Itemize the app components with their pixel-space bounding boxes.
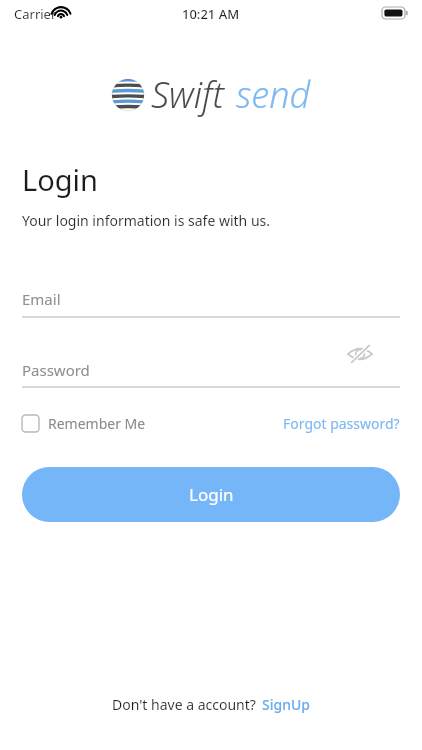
staticText: Carrier [14, 5, 57, 23]
button[interactable]: SignUp [262, 695, 310, 714]
staticText: Email [22, 289, 61, 309]
button[interactable]: Login [22, 467, 400, 522]
staticText: send [236, 70, 311, 119]
staticText: Your login information is safe with us. [22, 211, 271, 230]
button[interactable]: Show password [344, 338, 376, 370]
staticText: Swift [151, 70, 225, 119]
staticText: 10:21 AM [182, 5, 240, 23]
staticText: SignUp [262, 695, 310, 714]
button[interactable]: Email [22, 280, 400, 318]
button[interactable]: Password [22, 352, 400, 388]
button[interactable]: Remember Me [22, 414, 146, 433]
staticText: Login [22, 160, 98, 199]
staticText: Remember Me [48, 414, 146, 433]
staticText: Login [189, 483, 234, 506]
staticText: Forgot password? [283, 414, 400, 433]
button[interactable]: Forgot password? [283, 414, 400, 433]
staticText: Don't have a account? [112, 695, 256, 714]
staticText: Password [22, 360, 90, 380]
